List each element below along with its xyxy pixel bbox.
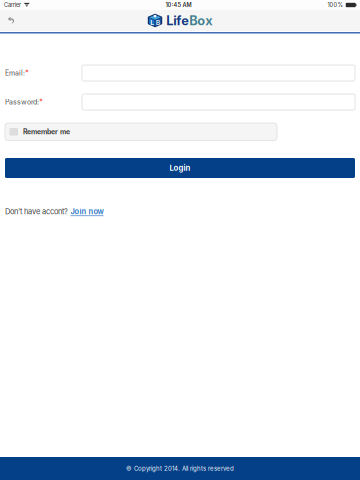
- button[interactable]: Join now: [70, 207, 103, 216]
- button[interactable]: Remember me: [5, 123, 277, 140]
- staticText: 10:45 AM: [165, 2, 191, 8]
- staticText: Password:: [5, 98, 39, 106]
- staticText: Remember me: [23, 128, 70, 136]
- staticText: *: [25, 69, 29, 77]
- staticText: Don't have accont?: [5, 207, 68, 216]
- button[interactable]: Login: [5, 158, 355, 178]
- staticText: © Copyright 2014. All rights reserved: [126, 465, 234, 472]
- staticText: Join now: [70, 207, 103, 216]
- staticText: Email:: [5, 69, 25, 77]
- button[interactable]: Back: [3, 10, 20, 31]
- staticText: B: [156, 18, 160, 27]
- staticText: Life: [166, 13, 189, 28]
- staticText: Carrier: [4, 2, 21, 8]
- staticText: Login: [169, 163, 190, 173]
- staticText: *: [39, 98, 43, 106]
- staticText: Box: [189, 13, 212, 28]
- staticText: L: [150, 18, 154, 27]
- staticText: 100%: [327, 2, 342, 8]
